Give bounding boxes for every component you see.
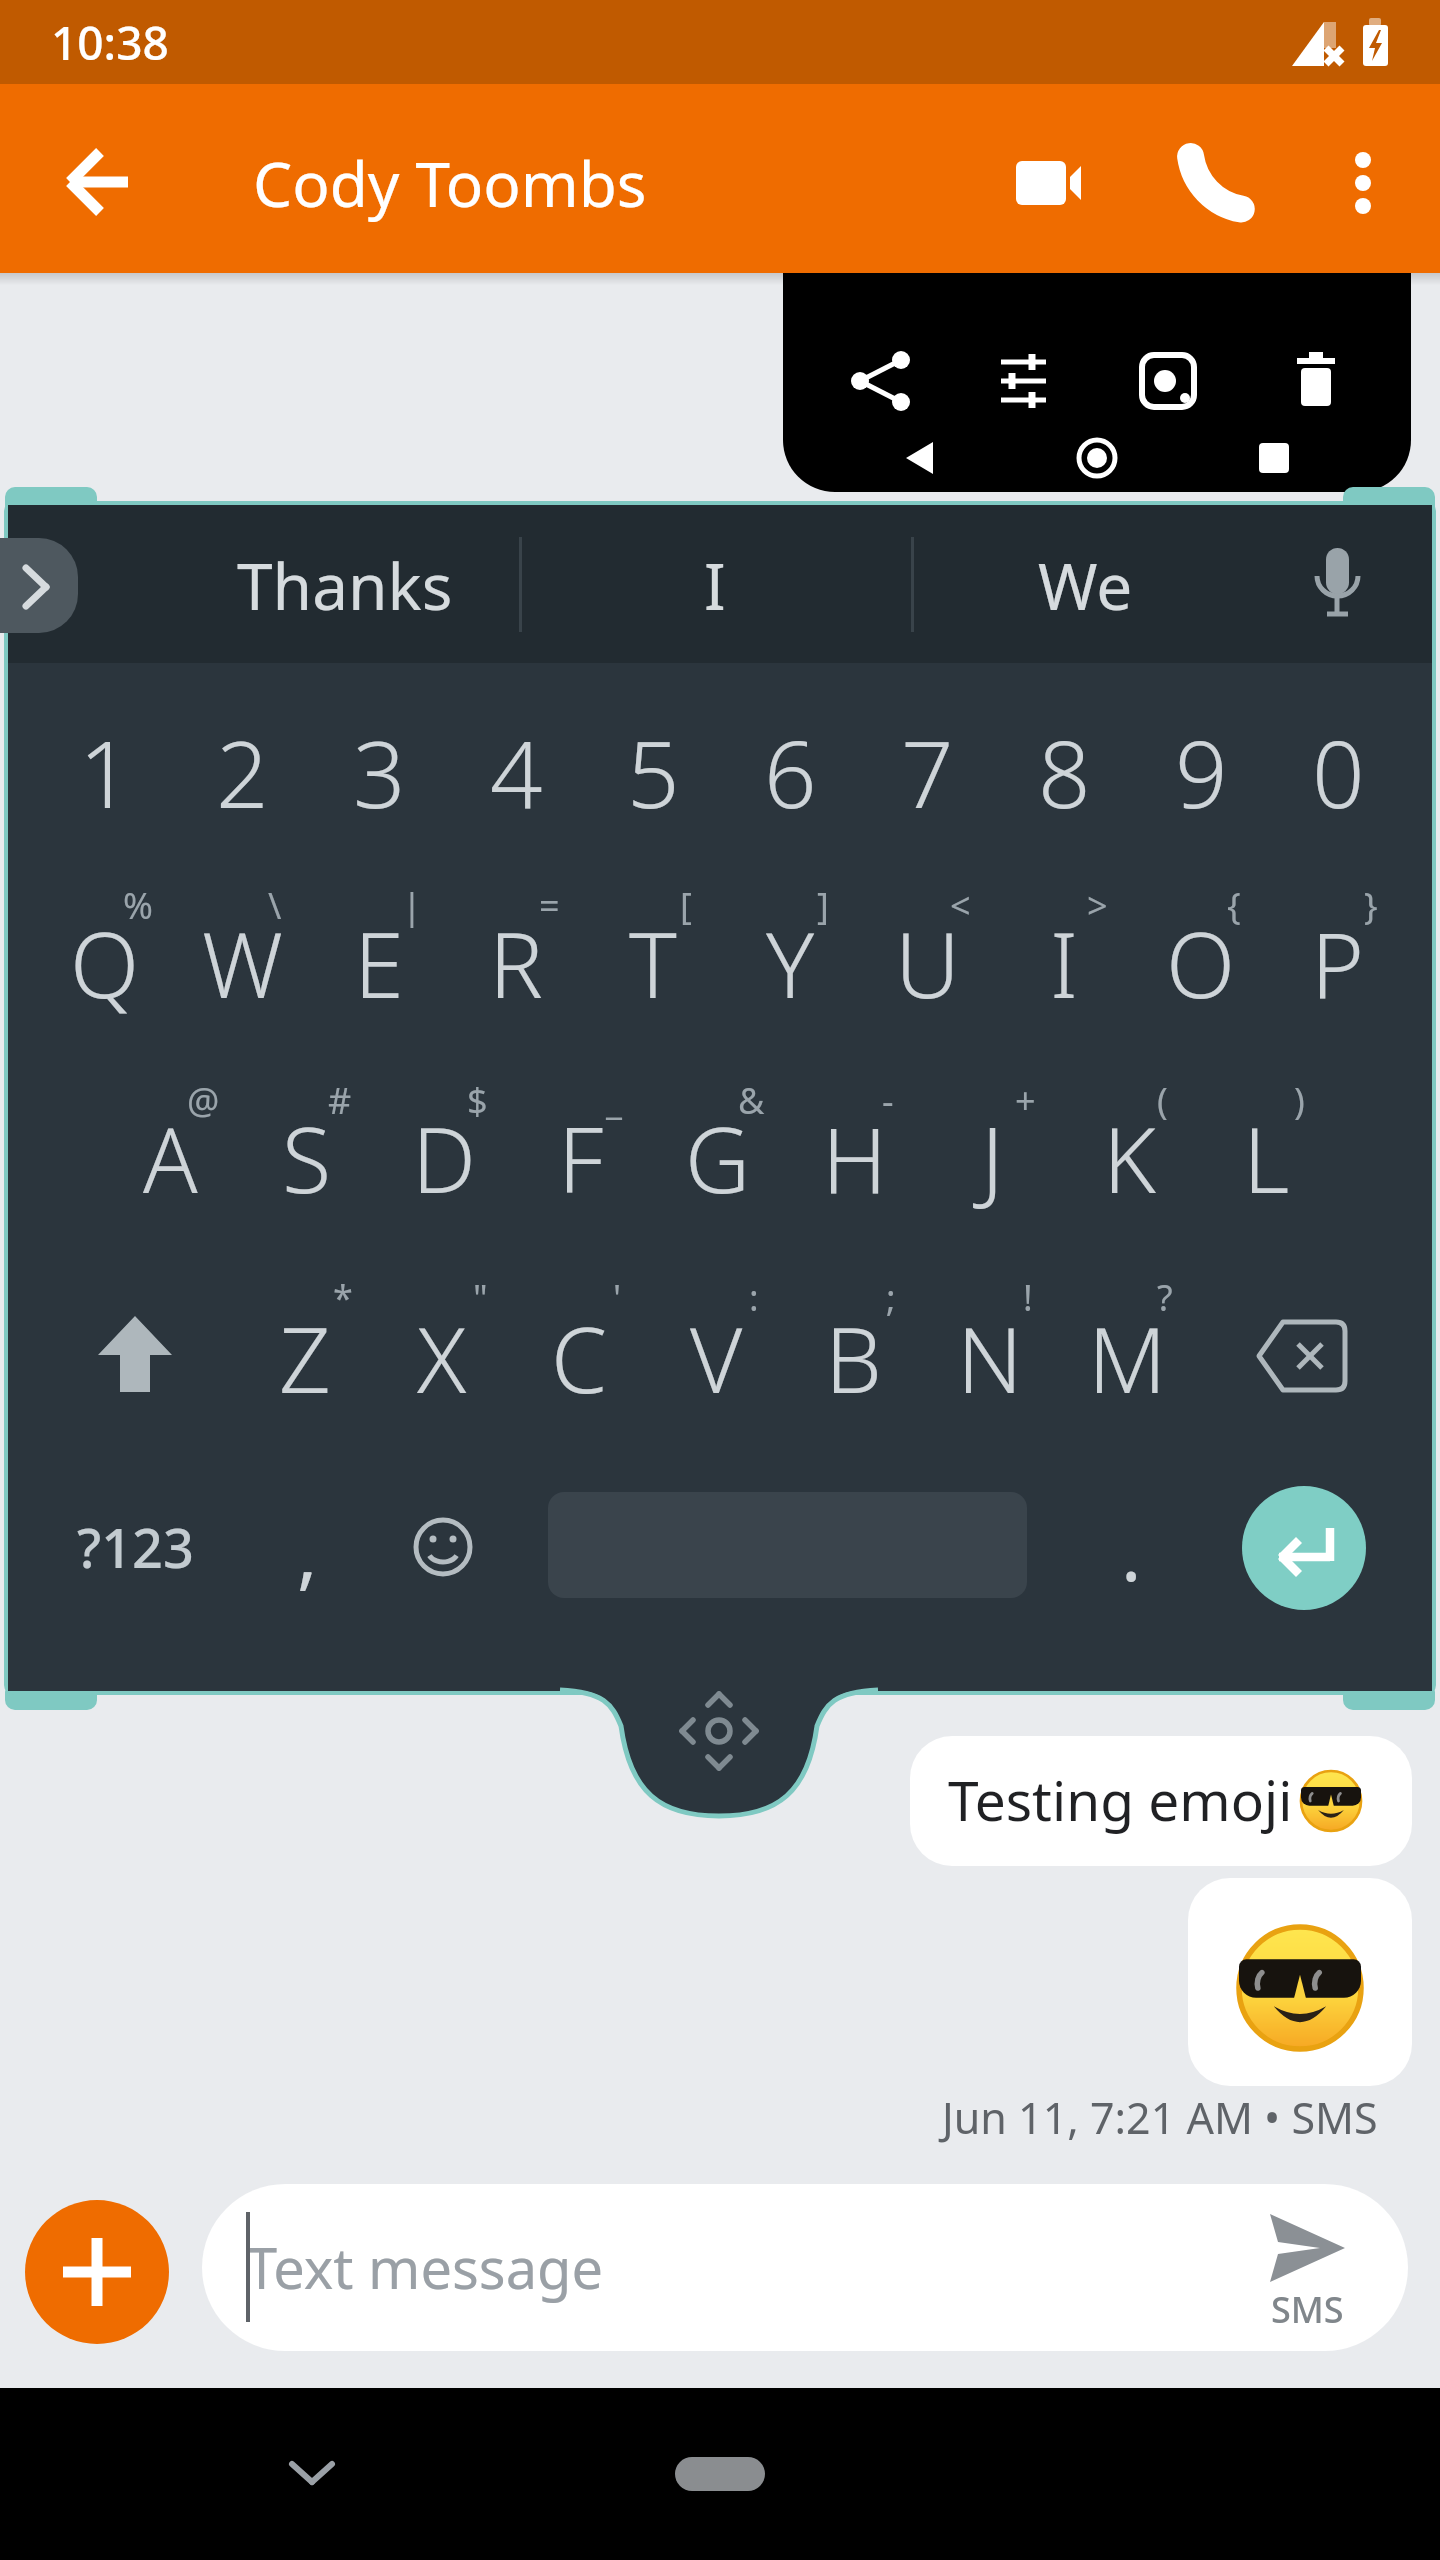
button[interactable] [1188,1878,1412,2086]
button[interactable] [202,2184,1408,2351]
staticText: C [551,1297,608,1420]
button[interactable]: Thanks [180,517,510,653]
staticText: I [704,542,726,629]
staticText: } [1364,881,1378,930]
button[interactable]: A [102,1061,238,1255]
button[interactable]: We [950,517,1220,653]
staticText: \ [268,881,282,930]
button[interactable]: C [511,1261,647,1455]
staticText: X [417,1297,467,1420]
staticText: SMS [1271,2285,1344,2334]
button[interactable]: 8 [996,675,1132,869]
staticText: L [1243,1097,1290,1220]
staticText: 4 [490,710,543,835]
button[interactable]: X [374,1261,510,1455]
button[interactable]: 6 [722,675,858,869]
staticText: D [412,1097,476,1220]
staticText: M [1088,1297,1167,1420]
button[interactable]: G [650,1061,786,1255]
button[interactable]: K [1061,1061,1197,1255]
button[interactable] [0,538,78,633]
staticText: [ [680,881,692,930]
button[interactable]: H [787,1061,923,1255]
button[interactable]: V [648,1261,784,1455]
staticText: We [1038,542,1133,629]
staticText: ' [613,1273,622,1322]
button[interactable]: D [376,1061,512,1255]
staticText: 1 [79,710,132,835]
button[interactable]: J [924,1061,1060,1255]
button[interactable] [910,1736,1412,1866]
button[interactable]: 5 [585,675,721,869]
staticText: % [123,881,153,930]
button[interactable] [378,1481,508,1615]
staticText: A [143,1097,198,1220]
staticText: V [690,1297,743,1420]
staticText: Testing emoji [948,1762,1293,1837]
button[interactable]: R [448,866,584,1060]
staticText: K [1103,1097,1156,1220]
staticText: # [328,1076,352,1125]
staticText: ) [1294,1076,1305,1125]
button[interactable] [25,2200,169,2344]
button[interactable] [40,126,154,240]
button[interactable]: I [580,517,850,653]
staticText: $ [467,1076,488,1125]
button[interactable] [1306,126,1420,240]
button[interactable]: Q [37,866,173,1060]
staticText: = [539,881,560,930]
button[interactable]: P [1270,866,1406,1060]
staticText: 9 [1175,710,1228,835]
staticText: Text message [246,2229,604,2305]
staticText: U [895,902,960,1025]
button[interactable]: U [859,866,995,1060]
button[interactable]: 3 [311,675,447,869]
button[interactable]: E [311,866,447,1060]
button[interactable]: 0 [1270,675,1406,869]
staticText: 3 [353,710,406,835]
staticText: - [882,1076,894,1125]
staticText: I [1050,902,1078,1025]
button[interactable]: L [1198,1061,1334,1255]
staticText: @ [187,1076,220,1125]
staticText: T [629,902,677,1025]
button[interactable]: W [174,866,310,1060]
staticText: P [1311,902,1365,1025]
button[interactable]: I [996,866,1132,1060]
button[interactable]: 1 [37,675,173,869]
button[interactable]: 2 [174,675,310,869]
staticText: & [738,1076,765,1125]
staticText: _ [606,1076,622,1125]
button[interactable]: 7 [859,675,995,869]
button[interactable]: M [1059,1261,1195,1455]
staticText: Y [766,902,815,1025]
button[interactable]: 4 [448,675,584,869]
button[interactable]: Y [722,866,858,1060]
staticText: ? [1157,1273,1173,1322]
button[interactable] [1158,126,1272,240]
button[interactable]: S [239,1061,375,1255]
button[interactable] [60,1261,210,1455]
button[interactable] [1242,1486,1366,1610]
staticText: Z [279,1297,331,1420]
button[interactable]: Z [237,1261,373,1455]
staticText: 0 [1312,710,1365,835]
staticText: O [1166,902,1236,1025]
staticText: 10:38 [51,11,169,74]
staticText: F [558,1097,604,1220]
button[interactable]: T [585,866,721,1060]
button[interactable]: B [785,1261,921,1455]
button[interactable] [990,126,1104,240]
button[interactable]: F [513,1061,649,1255]
button[interactable] [1228,1261,1378,1455]
staticText: 6 [764,710,817,835]
button[interactable]: 9 [1133,675,1269,869]
staticText: 2 [216,710,269,835]
staticText: N [957,1297,1023,1420]
button[interactable]: N [922,1261,1058,1455]
staticText: G [685,1097,751,1220]
button[interactable]: O [1133,866,1269,1060]
staticText: " [473,1273,488,1322]
staticText: Q [70,902,140,1025]
